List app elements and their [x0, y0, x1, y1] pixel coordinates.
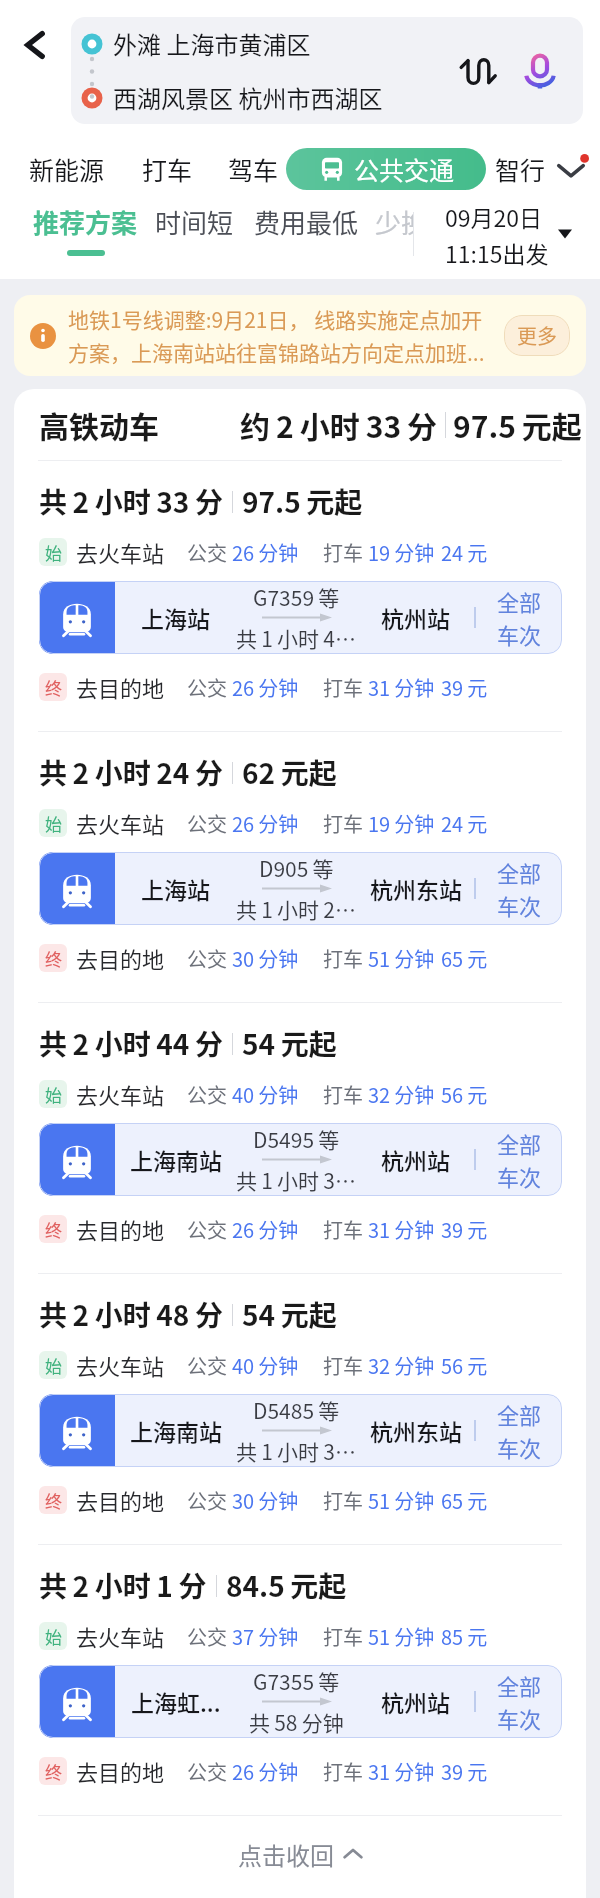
staticText: 19 分钟: [368, 809, 435, 838]
staticText: 打车: [323, 1757, 363, 1786]
button[interactable]: 全部: [476, 1665, 562, 1738]
staticText: 共 1 小时 27 分: [236, 894, 357, 924]
button[interactable]: 驾车: [228, 151, 279, 187]
button[interactable]: 上海虹...: [39, 1665, 562, 1738]
button[interactable]: 全部: [476, 852, 562, 925]
staticText: 点击收回: [238, 1837, 334, 1872]
button[interactable]: 公共交通: [286, 148, 486, 190]
staticText: 公交: [187, 1215, 227, 1244]
staticText: 车次: [497, 618, 542, 650]
staticText: G7359 等: [253, 582, 340, 612]
staticText: 杭州站: [381, 1143, 450, 1176]
button[interactable]: 09月20日: [413, 197, 600, 271]
staticText: 31 分钟: [368, 1215, 435, 1244]
staticText: 杭州东站: [370, 872, 462, 905]
button[interactable]: 时间短: [155, 203, 234, 241]
staticText: 公交: [187, 1351, 227, 1380]
staticText: 推荐方案: [33, 203, 138, 241]
button[interactable]: 新能源: [29, 151, 105, 187]
button[interactable]: 共 2 小时 48 分: [14, 1274, 586, 1544]
staticText: 终: [45, 1759, 62, 1784]
button[interactable]: 共 2 小时 24 分: [14, 732, 586, 1002]
button[interactable]: More travel modes: [548, 146, 594, 192]
button[interactable]: 外滩 上海市黄浦区: [71, 17, 583, 124]
staticText: 26 分钟: [232, 809, 299, 838]
staticText: 去目的地: [76, 1755, 165, 1787]
staticText: 共 2 小时 48 分: [39, 1294, 223, 1335]
button[interactable]: 打车: [142, 151, 193, 187]
staticText: 26 分钟: [232, 1757, 299, 1786]
staticText: 31 分钟: [368, 673, 435, 702]
button[interactable]: 上海南站: [39, 1394, 562, 1467]
staticText: 公交: [187, 538, 227, 567]
staticText: 公交: [187, 1622, 227, 1651]
button[interactable]: 共 2 小时 33 分: [14, 461, 586, 731]
staticText: 公交: [187, 673, 227, 702]
staticText: 97.5 元起: [453, 403, 582, 446]
staticText: 打车: [323, 1080, 363, 1109]
staticText: 方案，上海南站站往富锦路站方向定点加班...: [68, 337, 485, 367]
staticText: 40 分钟: [232, 1351, 299, 1380]
button[interactable]: Voice search: [509, 40, 571, 102]
button[interactable]: 上海站: [39, 581, 562, 654]
staticText: 终: [45, 1488, 62, 1513]
button[interactable]: 全部: [476, 1394, 562, 1467]
staticText: 打车: [323, 809, 363, 838]
staticText: 打车: [323, 1351, 363, 1380]
staticText: 始: [45, 811, 62, 836]
staticText: 公交: [187, 1080, 227, 1109]
staticText: 高铁动车: [39, 403, 159, 446]
staticText: 全部: [497, 585, 542, 617]
staticText: 共 2 小时 33 分: [39, 481, 223, 522]
button[interactable]: 智行: [495, 151, 546, 187]
staticText: 全部: [497, 1127, 542, 1159]
staticText: D5495 等: [253, 1124, 340, 1154]
staticText: 56 元: [441, 1351, 488, 1380]
button[interactable]: 共 2 小时 1 分: [14, 1545, 586, 1815]
staticText: 打车: [323, 538, 363, 567]
staticText: 公交: [187, 809, 227, 838]
staticText: 共 2 小时 44 分: [39, 1023, 223, 1064]
staticText: 车次: [497, 889, 542, 921]
button[interactable]: 上海站: [39, 852, 562, 925]
staticText: 始: [45, 1624, 62, 1649]
staticText: 打车: [323, 673, 363, 702]
staticText: 26 分钟: [232, 673, 299, 702]
button[interactable]: 费用最低: [254, 203, 359, 241]
staticText: 西湖风景区 杭州市西湖区: [113, 80, 383, 115]
staticText: 85 元: [441, 1622, 488, 1651]
staticText: 公交: [187, 944, 227, 973]
button[interactable]: 推荐方案: [33, 197, 138, 256]
staticText: 上海南站: [130, 1143, 222, 1176]
button[interactable]: 少换乘: [375, 203, 454, 241]
staticText: 31 分钟: [368, 1757, 435, 1786]
staticText: 51 分钟: [368, 944, 435, 973]
staticText: 去火车站: [76, 536, 165, 568]
staticText: 全部: [497, 1398, 542, 1430]
button[interactable]: 上海南站: [39, 1123, 562, 1196]
staticText: 62 元起: [242, 752, 337, 793]
staticText: 打车: [323, 1215, 363, 1244]
staticText: 车次: [497, 1702, 542, 1734]
button[interactable]: 共 2 小时 44 分: [14, 1003, 586, 1273]
button[interactable]: 更多: [504, 315, 570, 356]
staticText: 26 分钟: [232, 538, 299, 567]
staticText: 去目的地: [76, 1484, 165, 1516]
button[interactable]: 全部: [476, 581, 562, 654]
staticText: 全部: [497, 1669, 542, 1701]
staticText: 去火车站: [76, 1078, 165, 1110]
staticText: 外滩 上海市黄浦区: [113, 26, 311, 61]
staticText: D5485 等: [253, 1395, 340, 1425]
staticText: 39 元: [441, 1757, 488, 1786]
button[interactable]: 点击收回: [14, 1816, 586, 1892]
staticText: 去目的地: [76, 1213, 165, 1245]
button[interactable]: 全部: [476, 1123, 562, 1196]
button[interactable]: Swap origin and destination: [447, 40, 509, 102]
staticText: 32 分钟: [368, 1080, 435, 1109]
staticText: 去火车站: [76, 1349, 165, 1381]
button[interactable]: Back: [4, 14, 66, 76]
staticText: 65 元: [441, 944, 488, 973]
button[interactable]: 地铁1号线调整:9月21日， 线路实施定点加开: [14, 295, 586, 376]
staticText: 54 元起: [242, 1294, 337, 1335]
staticText: 更多: [517, 321, 557, 350]
